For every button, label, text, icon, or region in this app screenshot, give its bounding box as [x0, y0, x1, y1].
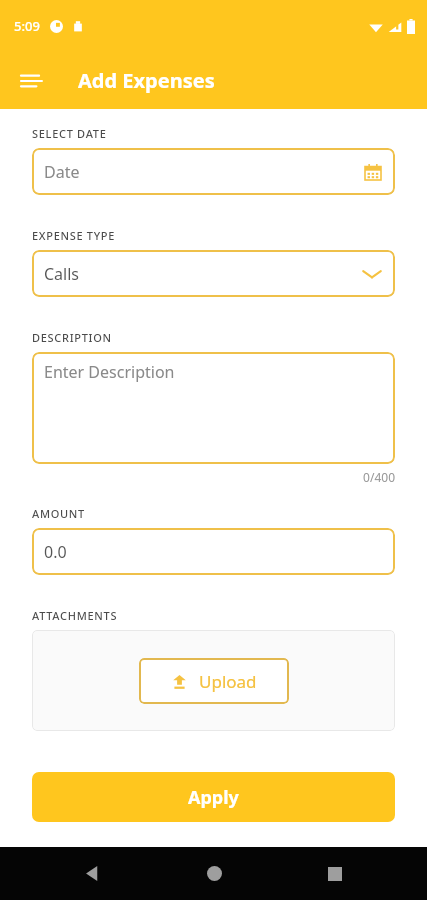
button[interactable]: Upload	[139, 658, 289, 704]
staticText: 0.0	[44, 541, 67, 563]
staticText: SELECT DATE	[32, 126, 107, 141]
button[interactable]: Enter Description	[32, 352, 395, 464]
staticText: ATTACHMENTS	[32, 608, 118, 623]
staticText: AMOUNT	[32, 506, 85, 521]
button[interactable]: 0.0	[32, 528, 395, 575]
button[interactable]: Date	[32, 148, 395, 195]
button[interactable]: Apply	[32, 772, 395, 822]
staticText: Enter Description	[44, 361, 175, 383]
staticText: DESCRIPTION	[32, 330, 112, 345]
button[interactable]: Calls	[32, 250, 395, 297]
staticText: Calls	[44, 263, 80, 285]
staticText: EXPENSE TYPE	[32, 228, 116, 243]
button[interactable]: Menu	[10, 59, 54, 103]
button[interactable]: Recent apps	[306, 847, 364, 900]
staticText: Upload	[199, 670, 257, 693]
staticText: Add Expenses	[78, 67, 215, 94]
staticText: Date	[44, 161, 80, 183]
button[interactable]: Home	[185, 847, 243, 900]
staticText: Apply	[188, 785, 239, 810]
button[interactable]: Back	[63, 847, 121, 900]
staticText: 5:09	[14, 17, 40, 35]
staticText: 0/400	[32, 469, 395, 485]
